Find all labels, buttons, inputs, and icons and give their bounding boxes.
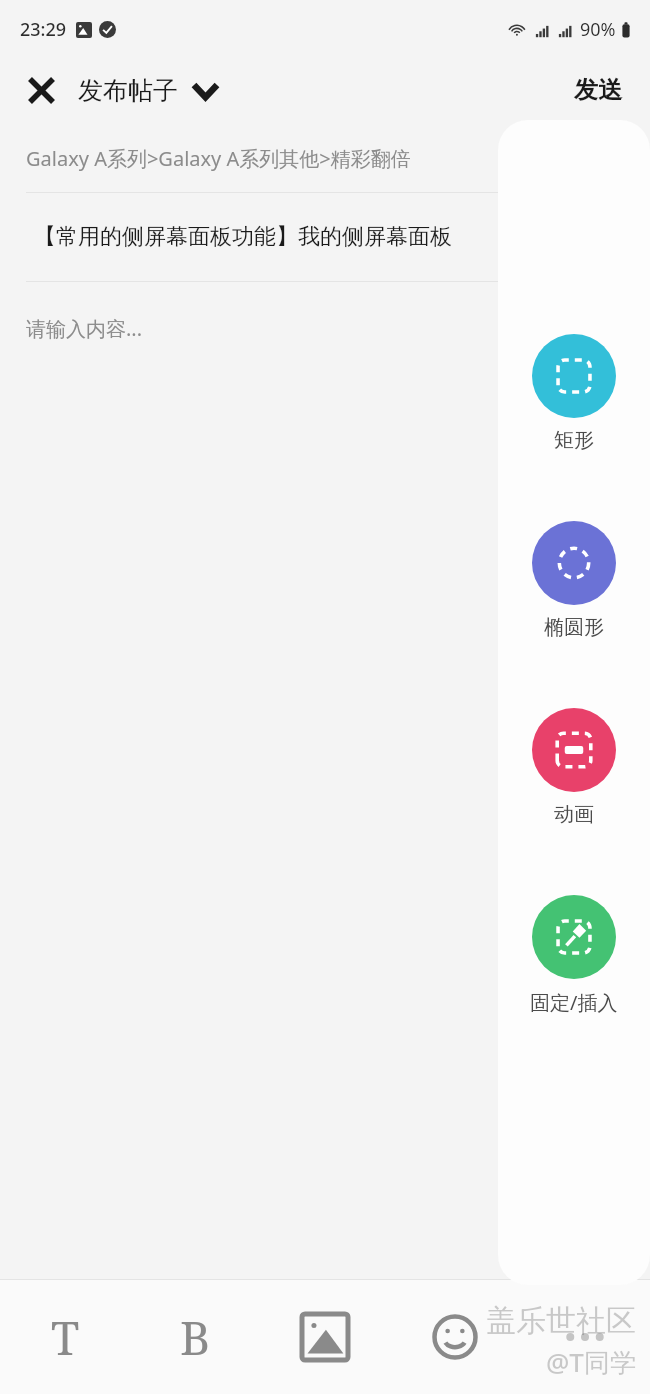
staticText: 请输入内容... bbox=[26, 315, 143, 342]
button[interactable]: Bold bbox=[130, 1280, 260, 1394]
button[interactable]: 请输入内容... bbox=[0, 282, 650, 374]
other: Pin bbox=[532, 895, 616, 979]
staticText: T bbox=[51, 1306, 80, 1369]
staticText: 固定/插入 bbox=[530, 989, 618, 1016]
staticText: 盖乐世社区 bbox=[486, 1302, 636, 1340]
staticText: 发布帖子 bbox=[78, 75, 178, 106]
button[interactable]: Close bbox=[12, 61, 70, 119]
button[interactable]: Text style bbox=[0, 1280, 130, 1394]
button[interactable]: Rectangle bbox=[528, 332, 620, 455]
button[interactable]: Ellipse bbox=[528, 519, 620, 642]
button[interactable]: Galaxy A系列>Galaxy A系列其他>精彩翻倍 bbox=[0, 136, 650, 180]
staticText: 【常用的侧屏幕面板功能】我的侧屏幕面板 bbox=[34, 223, 452, 251]
staticText: 发送 bbox=[574, 75, 622, 105]
other: Ellipse bbox=[532, 521, 616, 605]
button[interactable]: Emoji bbox=[390, 1280, 520, 1394]
staticText: Galaxy A系列>Galaxy A系列其他>精彩翻倍 bbox=[26, 145, 411, 172]
button[interactable]: GIF bbox=[528, 706, 620, 829]
button[interactable]: Insert image bbox=[260, 1280, 390, 1394]
button[interactable]: 发布帖子 bbox=[74, 67, 223, 114]
staticText: B bbox=[180, 1306, 211, 1369]
staticText: 90% bbox=[580, 17, 616, 42]
button[interactable]: 【常用的侧屏幕面板功能】我的侧屏幕面板 bbox=[0, 193, 650, 281]
staticText: 动画 bbox=[554, 802, 594, 827]
staticText: @T同学 bbox=[546, 1344, 636, 1380]
button[interactable]: Pin bbox=[526, 893, 622, 1018]
staticText: 23:29 bbox=[20, 17, 67, 42]
other: GIF bbox=[532, 708, 616, 792]
staticText: 矩形 bbox=[554, 428, 594, 453]
other: Rectangle bbox=[532, 334, 616, 418]
staticText: 椭圆形 bbox=[544, 615, 604, 640]
button[interactable]: 发送 bbox=[556, 65, 640, 115]
button[interactable]: More bbox=[520, 1280, 650, 1394]
